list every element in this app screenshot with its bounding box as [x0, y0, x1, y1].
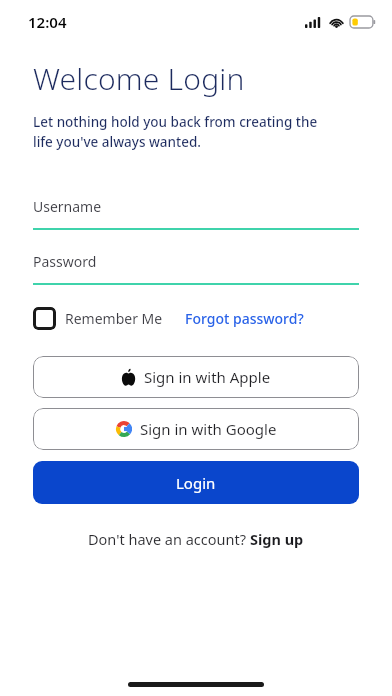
staticText: Welcome Login: [33, 58, 245, 99]
button[interactable]: Login: [33, 461, 359, 504]
staticText: Remember Me: [65, 309, 163, 328]
staticText: Don't have an account?: [88, 529, 246, 549]
staticText: Sign in with Google: [140, 419, 277, 439]
other: Apple: [121, 368, 136, 386]
other: Cellular signal: [305, 17, 323, 28]
staticText: Password: [33, 252, 97, 271]
staticText: Let nothing hold you back from creating …: [33, 113, 318, 151]
button[interactable]: Forgot password?: [185, 309, 304, 328]
button[interactable]: Google: [33, 408, 359, 450]
button[interactable]: Apple: [33, 356, 359, 398]
other: Battery: [350, 16, 376, 28]
staticText: 12:04: [28, 12, 67, 32]
other: Wi-Fi: [329, 17, 344, 28]
button[interactable]: Remember Me: [33, 307, 163, 330]
staticText: Login: [176, 473, 216, 493]
other: Google: [116, 421, 132, 437]
staticText: Username: [33, 197, 102, 216]
staticText: Sign in with Apple: [144, 367, 271, 387]
button[interactable]: Sign up: [250, 529, 304, 549]
